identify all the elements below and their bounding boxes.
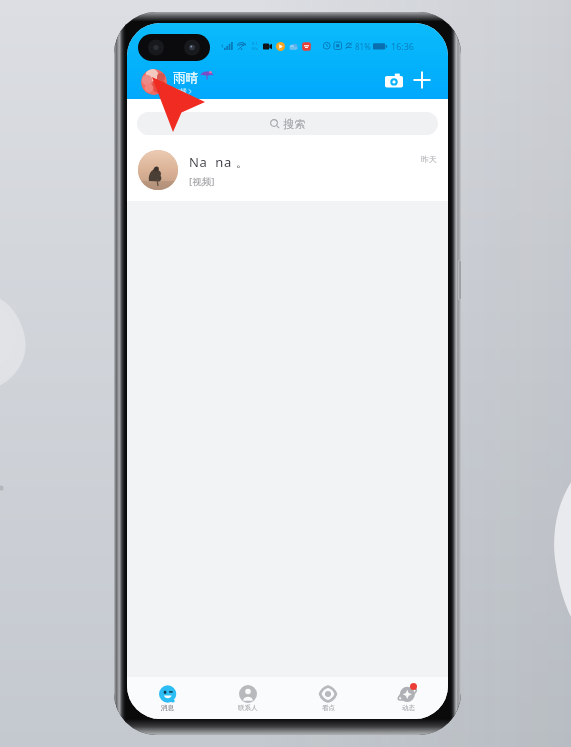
staticText: 16:36 <box>391 40 415 52</box>
button[interactable]: 搜索 <box>137 112 438 135</box>
button[interactable]: 消息 <box>127 677 208 719</box>
staticText: 在线 <box>173 87 187 96</box>
staticText: 搜索 <box>283 117 306 131</box>
staticText: 4 <box>221 43 224 49</box>
button[interactable]: Camera <box>380 66 408 94</box>
staticText: 联系人 <box>238 704 258 712</box>
button[interactable]: 看点 <box>288 677 368 719</box>
button[interactable]: Add <box>408 66 436 94</box>
staticText: 动态 <box>402 704 415 712</box>
button[interactable]: Profile avatar <box>141 69 167 95</box>
staticText: Na na 。 <box>189 153 250 171</box>
staticText: K/s <box>252 46 258 51</box>
button[interactable]: 动态 <box>368 677 448 719</box>
staticText: [视频] <box>189 175 215 188</box>
staticText: 81% <box>355 41 371 52</box>
staticText: 消息 <box>161 704 174 712</box>
staticText: 昨天 <box>421 154 437 164</box>
button[interactable]: Na na 。 <box>127 139 448 201</box>
staticText: 0.1 <box>252 41 258 46</box>
staticText: 雨晴 <box>173 70 198 86</box>
staticText: 看点 <box>322 704 335 712</box>
button[interactable]: 联系人 <box>208 677 288 719</box>
